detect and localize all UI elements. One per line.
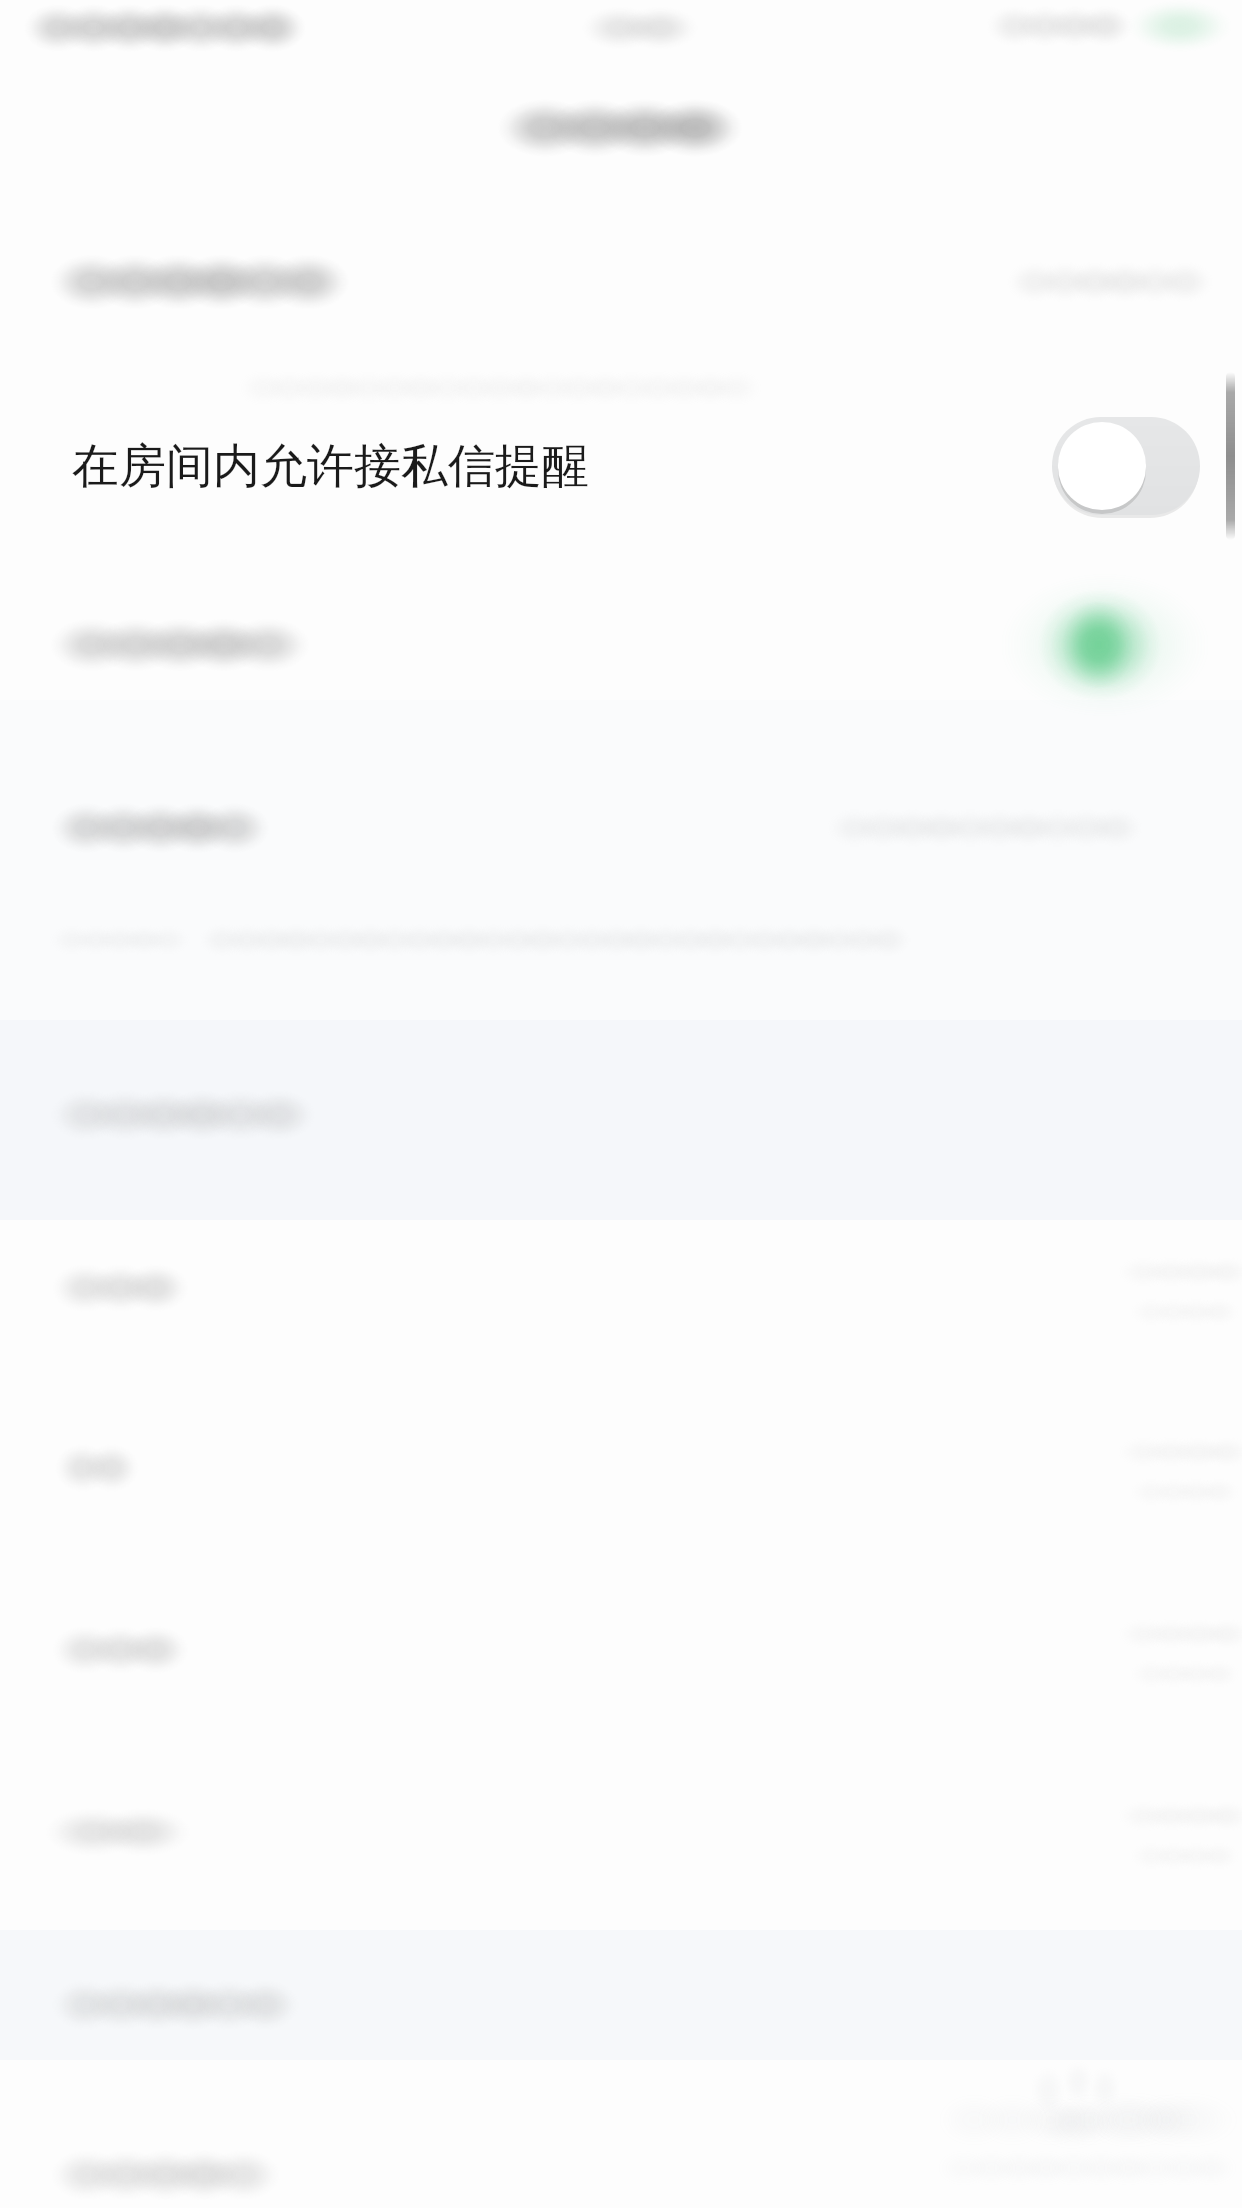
button[interactable]: 在房间内允许接私信提醒 开关，已关闭 — [1052, 416, 1200, 516]
staticText: 在房间内允许接私信提醒 — [72, 437, 589, 496]
button[interactable]: 在房间内允许接私信提醒 — [0, 392, 1242, 540]
